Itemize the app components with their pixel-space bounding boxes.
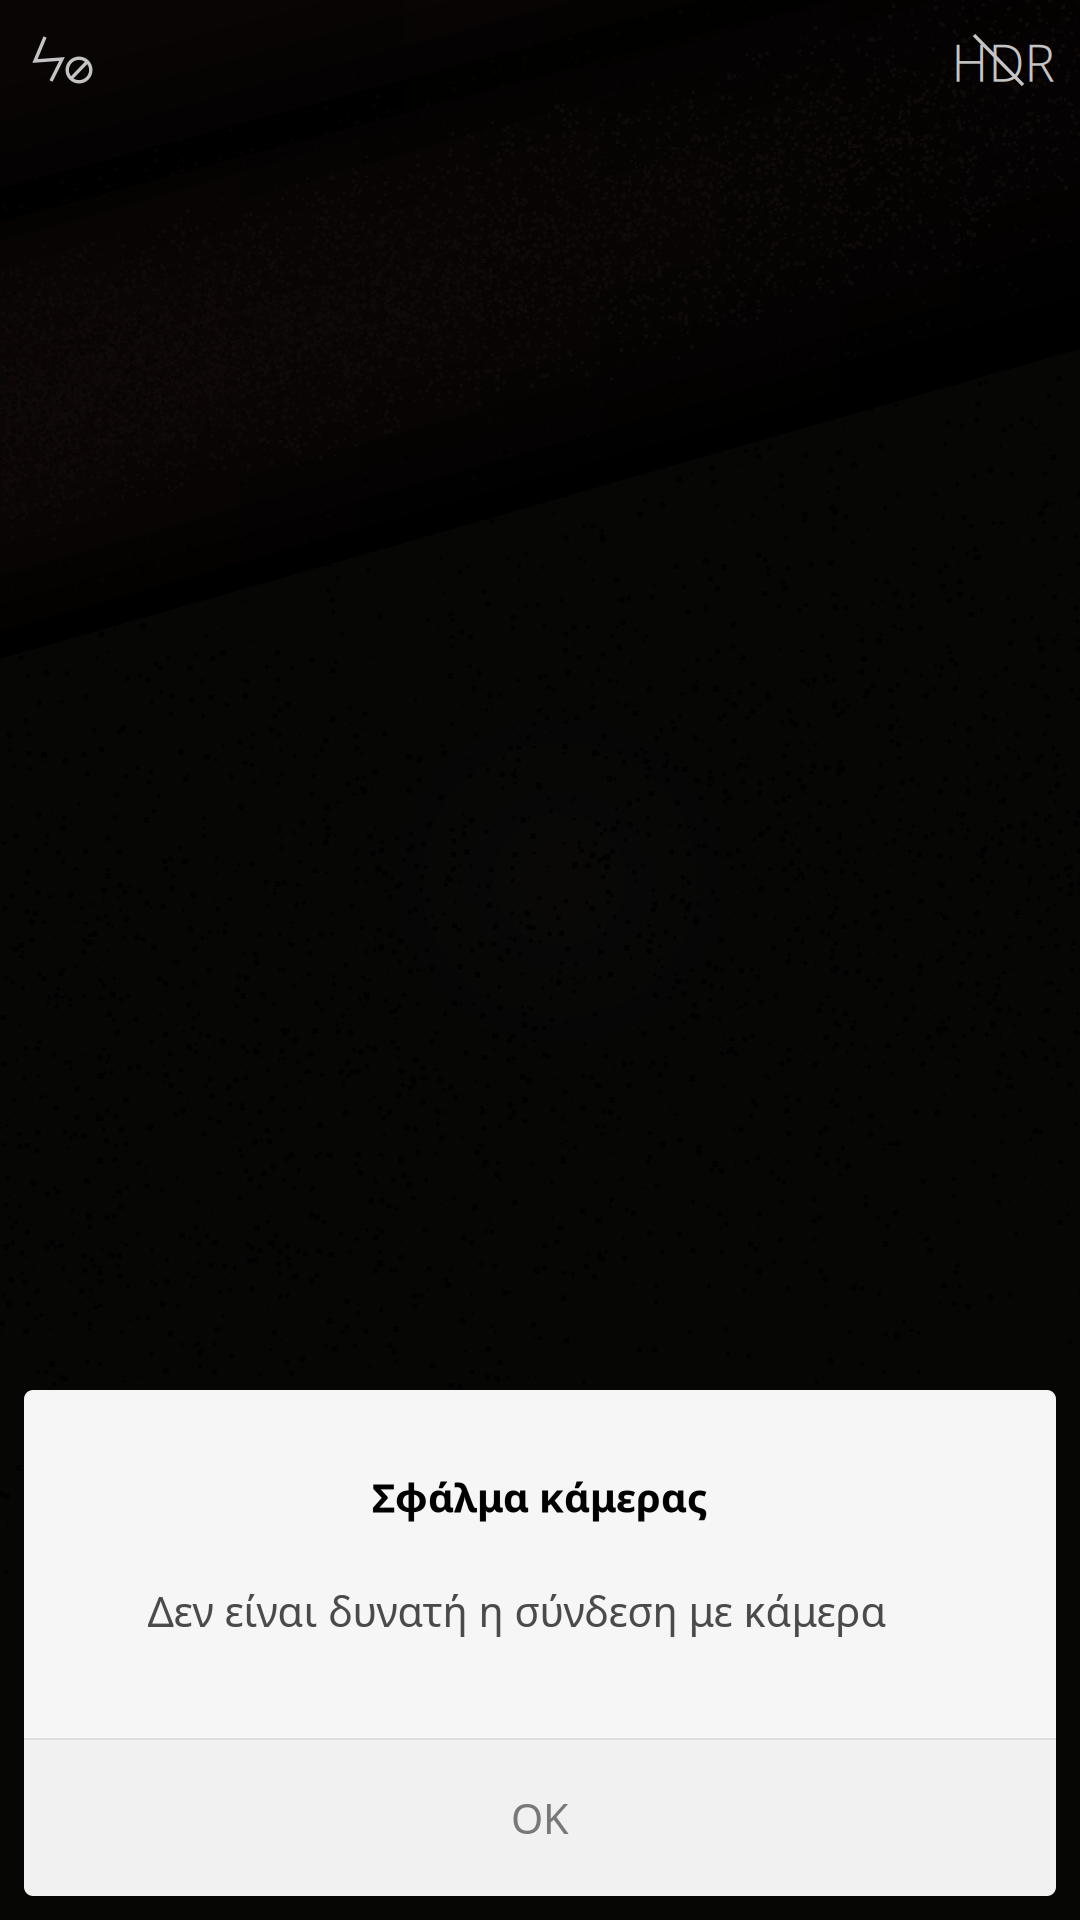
- button[interactable]: Flash off: [3, 14, 123, 124]
- staticText: Σφάλμα κάμερας: [372, 1470, 708, 1523]
- staticText: Δεν είναι δυνατή η σύνδεση με κάμερα: [147, 1584, 886, 1638]
- staticText: OK: [511, 1791, 569, 1845]
- button[interactable]: OK: [24, 1740, 1056, 1896]
- staticText: HDR: [951, 28, 1054, 96]
- button[interactable]: HDR off: [938, 7, 1068, 117]
